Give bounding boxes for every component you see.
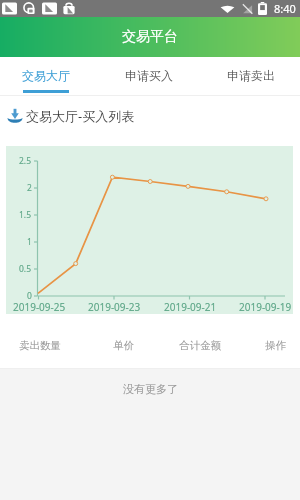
staticText: 卖出数量	[19, 339, 61, 352]
staticText: 2019-09-23	[88, 300, 141, 314]
staticText: 交易大厅	[22, 68, 70, 83]
staticText: 操作	[265, 339, 286, 352]
staticText: 0	[27, 290, 32, 302]
button[interactable]: 交易大厅	[0, 57, 92, 96]
staticText: 2019-09-25	[13, 300, 66, 314]
staticText: 8:40	[274, 1, 296, 16]
staticText: 申请卖出	[227, 68, 275, 83]
staticText: 2	[27, 182, 32, 194]
staticText: 2.5	[19, 155, 32, 167]
staticText: 合计金额	[179, 339, 221, 352]
staticText: 1	[27, 236, 32, 248]
staticText: 没有更多了	[123, 382, 178, 396]
staticText: 1.5	[19, 209, 32, 221]
staticText: 2019-09-21	[164, 300, 217, 314]
staticText: 交易大厅-买入列表	[26, 107, 135, 125]
staticText: 0.5	[19, 263, 32, 275]
button[interactable]: 申请买入	[103, 57, 195, 96]
staticText: 单价	[113, 339, 134, 352]
staticText: 2019-09-19	[239, 300, 292, 314]
staticText: 交易平台	[122, 28, 178, 46]
staticText: 申请买入	[125, 68, 173, 83]
button[interactable]: 申请卖出	[205, 57, 297, 96]
